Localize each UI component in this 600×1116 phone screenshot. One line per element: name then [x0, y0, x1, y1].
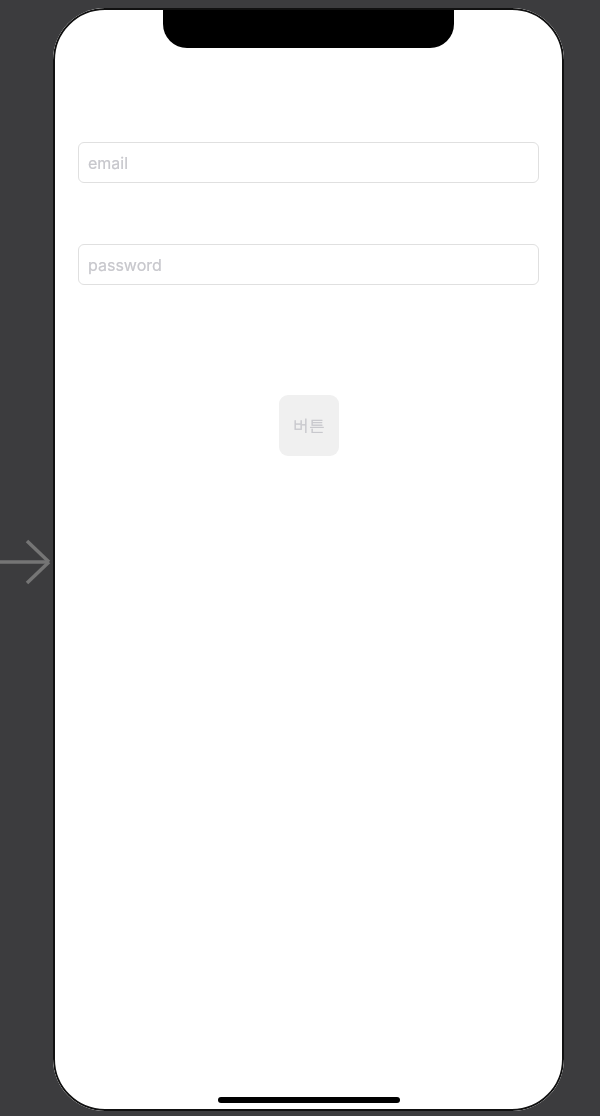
button[interactable]: password [78, 244, 539, 285]
staticText: email [88, 153, 129, 172]
staticText: 버튼 [293, 416, 325, 436]
button[interactable]: 버튼 [279, 395, 339, 456]
button[interactable]: email [78, 142, 539, 183]
staticText: password [88, 255, 162, 274]
